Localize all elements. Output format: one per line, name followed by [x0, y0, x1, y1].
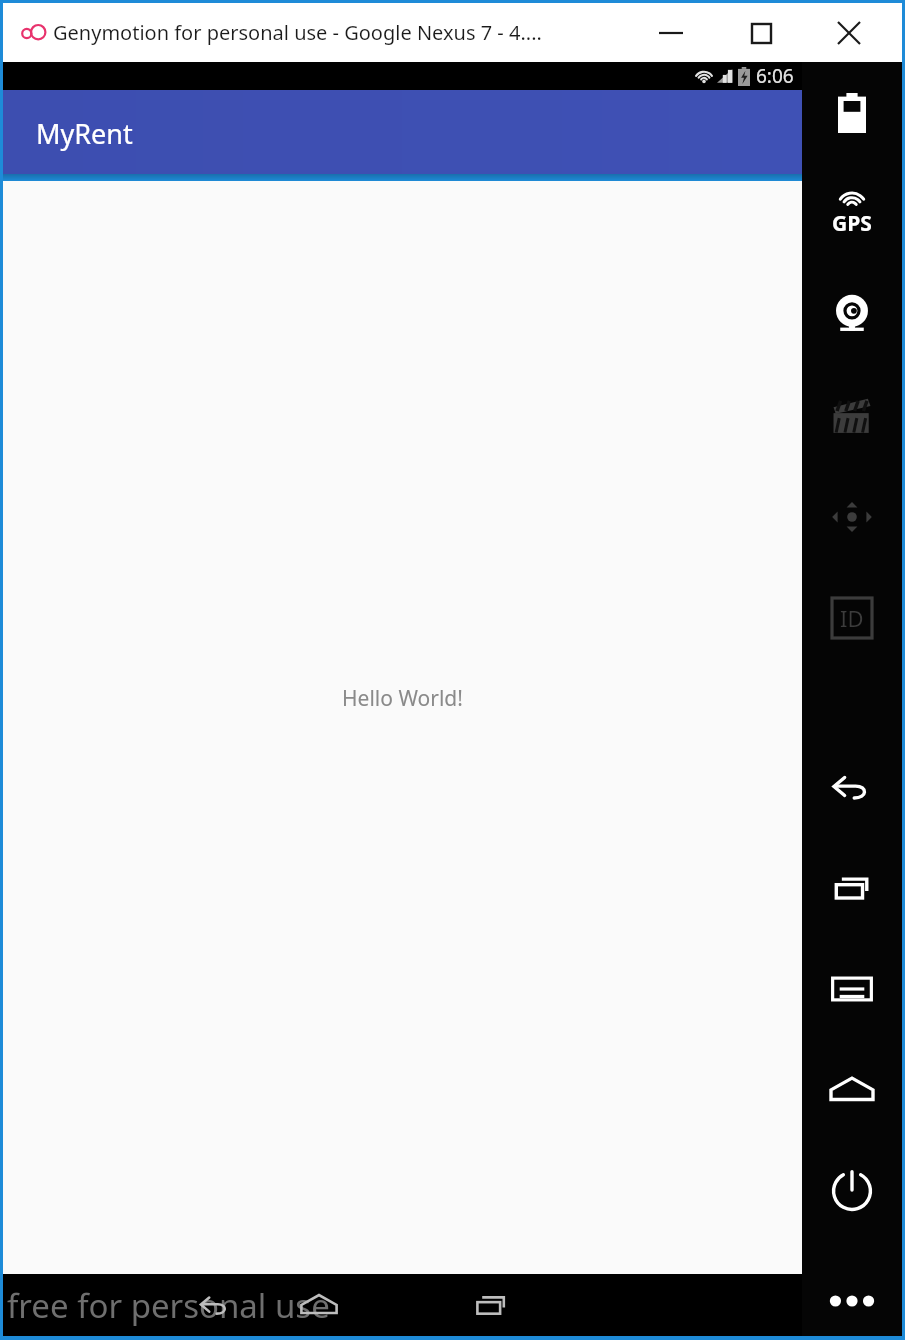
- staticText: free for personal use: [7, 1283, 330, 1328]
- staticText: 6:06: [756, 63, 794, 89]
- button[interactable]: Back: [802, 736, 902, 837]
- button[interactable]: Recent apps: [405, 1274, 577, 1336]
- button[interactable]: Minimize: [640, 5, 702, 61]
- button[interactable]: Back: [3, 1274, 233, 1336]
- button[interactable]: Rotate: [802, 466, 902, 567]
- button[interactable]: Menu: [802, 938, 902, 1039]
- button[interactable]: Screen recorder: [802, 365, 902, 466]
- button[interactable]: Maximize: [730, 5, 792, 61]
- button[interactable]: Power: [802, 1140, 902, 1241]
- staticText: MyRent: [36, 115, 133, 152]
- button[interactable]: Battery: [802, 62, 902, 163]
- button[interactable]: Recent apps: [802, 837, 902, 938]
- button[interactable]: Home: [233, 1274, 405, 1336]
- button[interactable]: Identifiers: [802, 567, 902, 668]
- staticText: ID: [840, 603, 864, 633]
- staticText: GPS: [832, 209, 872, 238]
- button[interactable]: MyRent: [3, 90, 802, 174]
- button[interactable]: Camera: [802, 264, 902, 365]
- button[interactable]: Home: [802, 1039, 902, 1140]
- staticText: Genymotion for personal use - Google Nex…: [53, 19, 542, 46]
- button[interactable]: Close: [818, 5, 880, 61]
- staticText: Hello World!: [342, 684, 463, 713]
- button[interactable]: GPS: [802, 163, 902, 264]
- button[interactable]: More options: [802, 1266, 902, 1336]
